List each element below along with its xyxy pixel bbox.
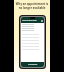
staticText: Appointments — [22, 19, 37, 22]
staticText: Continue — [28, 63, 38, 66]
staticText: Why an appointment is no longer availabl… — [14, 2, 50, 9]
